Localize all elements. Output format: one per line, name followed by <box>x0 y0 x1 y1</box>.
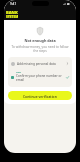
other: Verification shield <box>37 27 43 35</box>
staticText: Not enough data <box>4 38 76 43</box>
staticText: Add missing personal data <box>17 62 66 66</box>
staticText: Continue verification <box>23 94 57 98</box>
staticText: BANK <box>6 10 18 15</box>
button[interactable]: Add missing personal data <box>8 57 72 70</box>
staticText: Confirm your phone number or email <box>16 74 62 82</box>
button[interactable]: New <box>8 70 72 87</box>
button[interactable]: Continue verification <box>8 91 72 100</box>
staticText: To withdraw money, you need to follow th… <box>4 45 76 53</box>
staticText: New <box>16 71 22 74</box>
staticText: SYSTEM <box>6 15 19 19</box>
staticText: 9:41 <box>10 2 17 6</box>
